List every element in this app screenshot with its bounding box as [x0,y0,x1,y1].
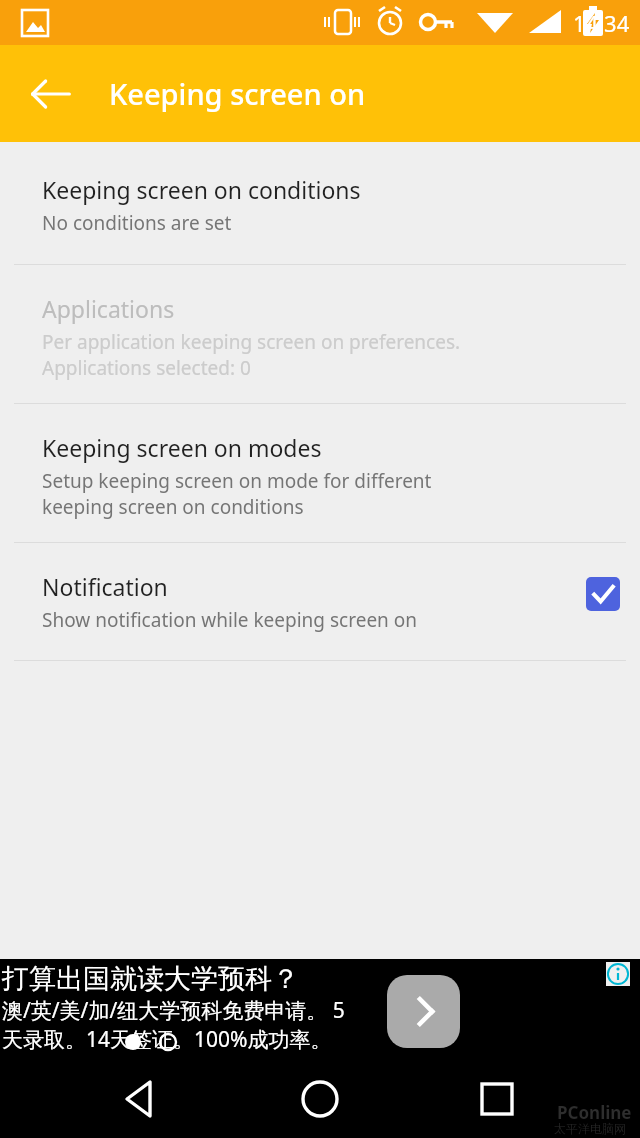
button[interactable]: Recent apps [469,1071,525,1127]
staticText: 太平洋电脑网 [554,1121,626,1136]
staticText: Keeping screen on [109,74,366,113]
staticText: 天录取。14天签证。100%成功率。 [2,1025,332,1054]
staticText: 14:34 [573,8,630,38]
button[interactable]: Ad information [606,962,630,986]
button[interactable]: Applications [0,265,640,381]
staticText: No conditions are set [42,210,232,236]
staticText: Per application keeping screen on prefer… [42,329,461,355]
staticText: 打算出国就读大学预科？ [2,962,299,996]
staticText: Applications [42,293,175,324]
staticText: Show notification while keeping screen o… [42,607,418,633]
staticText: keeping screen on conditions [42,494,304,520]
staticText: Applications selected: 0 [42,355,251,381]
button[interactable]: Keeping screen on modes [0,404,640,520]
staticText: PConline [557,1101,632,1124]
button[interactable]: Notification [0,543,640,633]
button[interactable]: Notification checkbox, checked [586,577,620,611]
staticText: Keeping screen on modes [42,432,322,463]
button[interactable]: Next ad [387,975,460,1048]
staticText: 澳/英/美/加/纽大学预科免费申请。 5 [2,996,345,1025]
button[interactable]: Back [24,67,78,121]
button[interactable]: Home [292,1071,348,1127]
button[interactable]: 打算出国就读大学预科？ [0,959,640,1060]
staticText: Keeping screen on conditions [42,174,361,205]
staticText: Notification [42,571,168,602]
staticText: Setup keeping screen on mode for differe… [42,468,432,494]
button[interactable]: Keeping screen on conditions [0,174,640,236]
button[interactable]: Back [112,1071,168,1127]
